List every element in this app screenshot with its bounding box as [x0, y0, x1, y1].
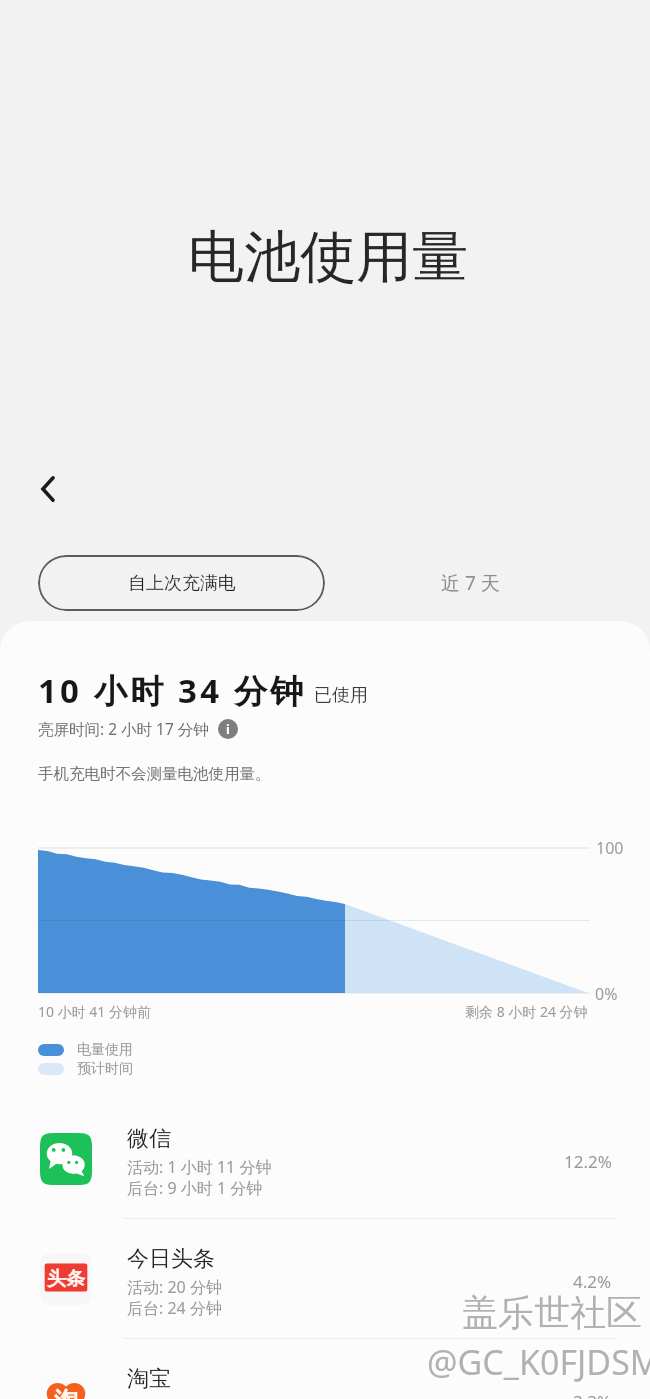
- staticText: 淘宝: [127, 1365, 171, 1393]
- staticText: @GC_K0FJDSM: [429, 1341, 650, 1387]
- staticText: 头条: [47, 1267, 85, 1291]
- staticText: 12.2%: [564, 1150, 612, 1173]
- staticText: 淘: [54, 1386, 78, 1399]
- staticText: 后台: 9 小时 1 分钟: [127, 1177, 263, 1199]
- button[interactable]: 自上次充满电: [38, 555, 325, 611]
- staticText: 预计时间: [77, 1060, 133, 1078]
- staticText: 剩余 8 小时 24 分钟: [465, 1002, 588, 1021]
- button[interactable]: 近 7 天: [355, 555, 585, 611]
- staticText: 盖乐世社区: [462, 1290, 642, 1335]
- staticText: @GC_K0FJDSM: [427, 1339, 650, 1385]
- staticText: 10 小时 34 分钟: [38, 668, 307, 713]
- staticText: 手机充电时不会测量电池使用量。: [38, 764, 271, 784]
- staticText: 电池使用量: [188, 222, 468, 293]
- button[interactable]: 微信: [0, 1099, 650, 1218]
- button[interactable]: Info: [218, 719, 238, 739]
- staticText: 电量使用: [77, 1041, 133, 1059]
- staticText: i: [226, 720, 230, 738]
- staticText: 后台: 24 分钟: [127, 1297, 222, 1319]
- staticText: 已使用: [314, 684, 368, 707]
- staticText: 活动: 20 分钟: [127, 1276, 222, 1298]
- button[interactable]: 头条: [0, 1219, 650, 1338]
- staticText: 3.3%: [573, 1390, 612, 1399]
- staticText: 自上次充满电: [128, 572, 236, 595]
- staticText: 今日头条: [127, 1245, 215, 1273]
- staticText: 微信: [127, 1125, 171, 1153]
- staticText: 100: [596, 837, 624, 859]
- button[interactable]: Back: [21, 461, 77, 517]
- button[interactable]: 淘: [0, 1339, 650, 1399]
- staticText: 4.2%: [573, 1270, 612, 1293]
- staticText: 0%: [595, 983, 618, 1005]
- staticText: 活动: 1 小时 11 分钟: [127, 1156, 272, 1178]
- staticText: 亮屏时间: 2 小时 17 分钟: [38, 718, 209, 739]
- staticText: 近 7 天: [441, 570, 500, 596]
- staticText: 10 小时 41 分钟前: [38, 1002, 151, 1021]
- staticText: 盖乐世社区: [464, 1292, 644, 1337]
